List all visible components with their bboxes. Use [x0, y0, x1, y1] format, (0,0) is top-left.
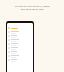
button[interactable]	[8, 26, 33, 30]
staticText: and keep them safe	[20, 7, 44, 10]
button[interactable]	[8, 30, 33, 34]
button[interactable]	[8, 58, 33, 62]
staticText: Curate all your photos, videos	[15, 4, 50, 7]
button[interactable]	[8, 34, 33, 38]
button[interactable]	[8, 38, 33, 42]
button[interactable]	[8, 42, 33, 46]
button[interactable]	[8, 46, 33, 50]
button[interactable]	[8, 54, 33, 58]
button[interactable]	[8, 50, 33, 54]
